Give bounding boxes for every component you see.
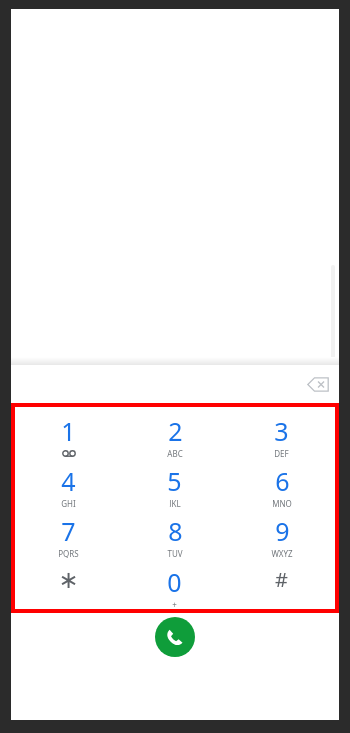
staticText: GHI bbox=[61, 498, 76, 507]
button[interactable]: 0 bbox=[121, 565, 228, 609]
staticText: 4 bbox=[61, 464, 76, 498]
staticText: WXYZ bbox=[271, 548, 293, 558]
staticText: MNO bbox=[272, 498, 292, 507]
staticText: 9 bbox=[275, 514, 290, 548]
staticText: 0 bbox=[167, 565, 182, 599]
staticText: + bbox=[172, 599, 177, 609]
button[interactable]: 6 bbox=[228, 464, 335, 507]
staticText: # bbox=[275, 566, 288, 593]
button[interactable]: 1 bbox=[15, 414, 121, 457]
staticText: 2 bbox=[168, 414, 183, 448]
button[interactable]: 9 bbox=[228, 514, 335, 558]
staticText: ∗ bbox=[58, 566, 79, 594]
button[interactable]: 5 bbox=[121, 464, 228, 507]
staticText: JKL bbox=[169, 498, 181, 507]
button[interactable]: 8 bbox=[121, 514, 228, 558]
staticText: 8 bbox=[168, 514, 183, 548]
staticText: TUV bbox=[167, 548, 183, 558]
staticText: PQRS bbox=[58, 548, 79, 558]
button[interactable]: ∗ bbox=[15, 558, 121, 609]
staticText: 6 bbox=[275, 464, 290, 498]
staticText: DEF bbox=[274, 448, 289, 457]
staticText: 3 bbox=[274, 414, 289, 448]
button[interactable]: 7 bbox=[15, 514, 121, 558]
staticText: 1 bbox=[61, 414, 76, 448]
button[interactable]: 3 bbox=[228, 414, 335, 457]
button[interactable]: Call bbox=[155, 617, 195, 657]
button[interactable]: Backspace bbox=[303, 369, 333, 399]
staticText: 7 bbox=[61, 514, 76, 548]
staticText: 5 bbox=[167, 464, 182, 498]
button[interactable]: # bbox=[228, 558, 335, 609]
button[interactable]: 4 bbox=[15, 464, 121, 507]
button[interactable]: 2 bbox=[121, 414, 228, 457]
staticText: ABC bbox=[167, 448, 183, 457]
